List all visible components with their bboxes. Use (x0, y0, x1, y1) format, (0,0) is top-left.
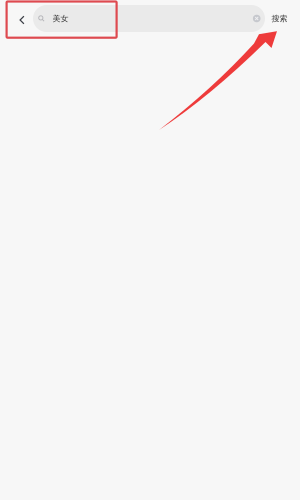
button[interactable]: Clear text (253, 15, 265, 22)
button[interactable]: Back (0, 0, 33, 37)
button[interactable]: 搜索 (265, 0, 300, 37)
staticText: 搜索 (271, 14, 287, 23)
staticText: 美女 (53, 14, 69, 23)
